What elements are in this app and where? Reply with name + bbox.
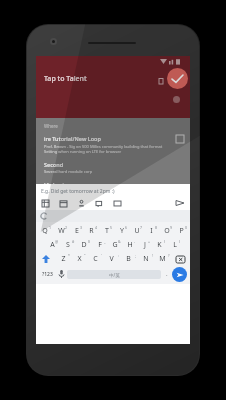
- staticText: Setting when running on LTE for browser: [44, 149, 122, 154]
- staticText: U: [134, 226, 140, 236]
- button[interactable]: E.g. Did get tomorrow at 2pm :): [41, 186, 185, 196]
- button[interactable]: U: [129, 224, 144, 238]
- staticText: W: [58, 226, 65, 236]
- button[interactable]: Image: [113, 199, 122, 208]
- button[interactable]: Save: [167, 68, 188, 89]
- button[interactable]: C: [87, 252, 103, 266]
- button[interactable]: X: [71, 252, 87, 266]
- button[interactable]: J: [137, 238, 152, 252]
- button[interactable]: Z: [55, 252, 71, 266]
- staticText: N: [143, 254, 149, 264]
- staticText: -: [134, 239, 136, 244]
- button[interactable]: O: [159, 224, 174, 238]
- button[interactable]: Delete: [156, 76, 166, 86]
- button[interactable]: Space: [67, 270, 161, 279]
- staticText: $: [88, 239, 91, 244]
- button[interactable]: Calendar: [59, 199, 68, 208]
- button[interactable]: Keyboard: [41, 199, 50, 208]
- staticText: E.g. Did get tomorrow at 2pm :): [41, 188, 115, 195]
- staticText: &: [118, 239, 121, 244]
- button[interactable]: Send message: [172, 267, 187, 282]
- button[interactable]: D: [76, 238, 92, 252]
- staticText: *: [68, 253, 70, 258]
- staticText: 9: [170, 225, 173, 230]
- button[interactable]: ?123: [39, 266, 55, 282]
- button[interactable]: G: [107, 238, 122, 252]
- staticText: Highest: [44, 181, 65, 184]
- staticText: @: [55, 239, 59, 244]
- button[interactable]: M: [154, 252, 171, 266]
- button[interactable]: Q: [37, 224, 53, 238]
- staticText: R: [89, 226, 94, 236]
- staticText: C: [93, 254, 98, 264]
- button[interactable]: T: [99, 224, 114, 238]
- staticText: ?: [168, 253, 170, 258]
- staticText: O: [164, 226, 170, 236]
- staticText: !: [152, 253, 153, 258]
- staticText: 0: [185, 225, 188, 230]
- staticText: A: [50, 240, 55, 250]
- button[interactable]: V: [103, 252, 120, 266]
- staticText: :: [118, 253, 119, 258]
- staticText: _: [104, 239, 106, 244]
- staticText: X: [77, 254, 82, 264]
- button[interactable]: Select: [176, 135, 184, 143]
- staticText: B: [126, 254, 131, 264]
- staticText: Tap to Talent: [44, 74, 87, 84]
- button[interactable]: H: [122, 238, 137, 252]
- staticText: P: [179, 226, 184, 236]
- staticText: M: [159, 254, 166, 264]
- button[interactable]: Backspace: [171, 252, 189, 266]
- button[interactable]: P: [174, 224, 189, 238]
- staticText: 8: [155, 225, 158, 230]
- staticText: 7: [140, 225, 143, 230]
- staticText: K: [157, 240, 162, 250]
- button[interactable]: W: [53, 224, 69, 238]
- button[interactable]: K: [152, 238, 167, 252]
- staticText: Y: [120, 226, 124, 236]
- button[interactable]: L: [167, 238, 182, 252]
- button[interactable]: Y: [114, 224, 129, 238]
- staticText: 1: [49, 225, 52, 230]
- button[interactable]: N: [137, 252, 154, 266]
- button[interactable]: Shift: [37, 252, 55, 266]
- staticText: +: [148, 239, 151, 244]
- staticText: 中/英: [109, 272, 120, 278]
- button[interactable]: Voice input: [55, 266, 67, 282]
- button[interactable]: Person: [77, 199, 86, 208]
- button[interactable]: .: [161, 266, 172, 282]
- staticText: G: [112, 240, 118, 250]
- staticText: J: [144, 240, 146, 250]
- staticText: S: [66, 240, 70, 250]
- button[interactable]: E: [69, 224, 84, 238]
- staticText: H: [127, 240, 133, 250]
- staticText: I: [150, 226, 153, 236]
- staticText: ;: [135, 253, 136, 258]
- staticText: Second: [44, 161, 64, 168]
- staticText: (: [164, 239, 166, 244]
- staticText: Prof. Brown - Sig on 500 Milles communit…: [44, 144, 163, 149]
- button[interactable]: Label: [95, 199, 104, 208]
- staticText: D: [81, 240, 87, 250]
- staticText: ?123: [42, 271, 53, 278]
- button[interactable]: R: [84, 224, 99, 238]
- staticText: .: [166, 270, 168, 278]
- staticText: L: [173, 240, 177, 250]
- button[interactable]: A: [44, 238, 60, 252]
- button[interactable]: F: [92, 238, 107, 252]
- staticText: ): [179, 239, 181, 244]
- staticText: 4: [95, 225, 98, 230]
- button[interactable]: B: [120, 252, 137, 266]
- staticText: #: [72, 239, 75, 244]
- staticText: V: [109, 254, 114, 264]
- staticText: E: [75, 226, 79, 236]
- button[interactable]: I: [144, 224, 159, 238]
- staticText: Several hard module corp: [44, 169, 93, 174]
- staticText: F: [98, 240, 102, 250]
- button[interactable]: Send: [175, 198, 185, 208]
- staticText: 5: [110, 225, 113, 230]
- staticText: Z: [61, 254, 66, 264]
- staticText: ire Tutorial/New Loop: [44, 135, 101, 142]
- staticText: 3: [80, 225, 83, 230]
- button[interactable]: S: [60, 238, 76, 252]
